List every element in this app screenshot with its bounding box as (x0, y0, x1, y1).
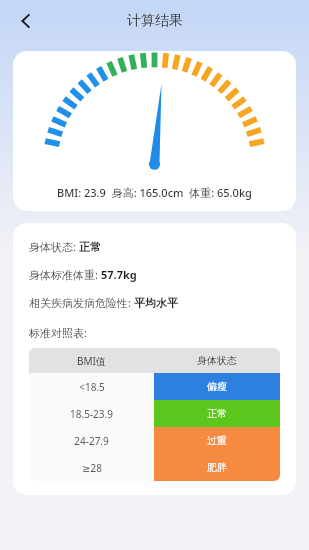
button[interactable]: Back (8, 3, 44, 39)
staticText: 计算结果 (127, 12, 183, 30)
staticText: 57.7kg (101, 267, 137, 282)
staticText: BMI值 (77, 354, 106, 368)
staticText: 肥胖 (207, 461, 227, 474)
staticText: 24-27.9 (74, 434, 109, 448)
staticText: 过重 (207, 434, 227, 447)
staticText: BMI: 23.9 身高: 165.0cm 体重: 65.0kg (57, 185, 252, 200)
staticText: 相关疾病发病危险性: (29, 295, 134, 310)
staticText: 偏瘦 (207, 380, 227, 393)
staticText: 18.5-23.9 (70, 407, 113, 421)
staticText: 身体状态 (197, 354, 237, 367)
staticText: ≥28 (82, 461, 102, 475)
staticText: 正常 (79, 240, 101, 254)
staticText: 身体状态: (29, 239, 79, 254)
staticText: 标准对照表: (29, 325, 87, 340)
staticText: 身体标准体重: (29, 267, 101, 282)
staticText: 正常 (207, 407, 227, 420)
staticText: <18.5 (79, 380, 105, 394)
staticText: 平均水平 (134, 296, 178, 310)
